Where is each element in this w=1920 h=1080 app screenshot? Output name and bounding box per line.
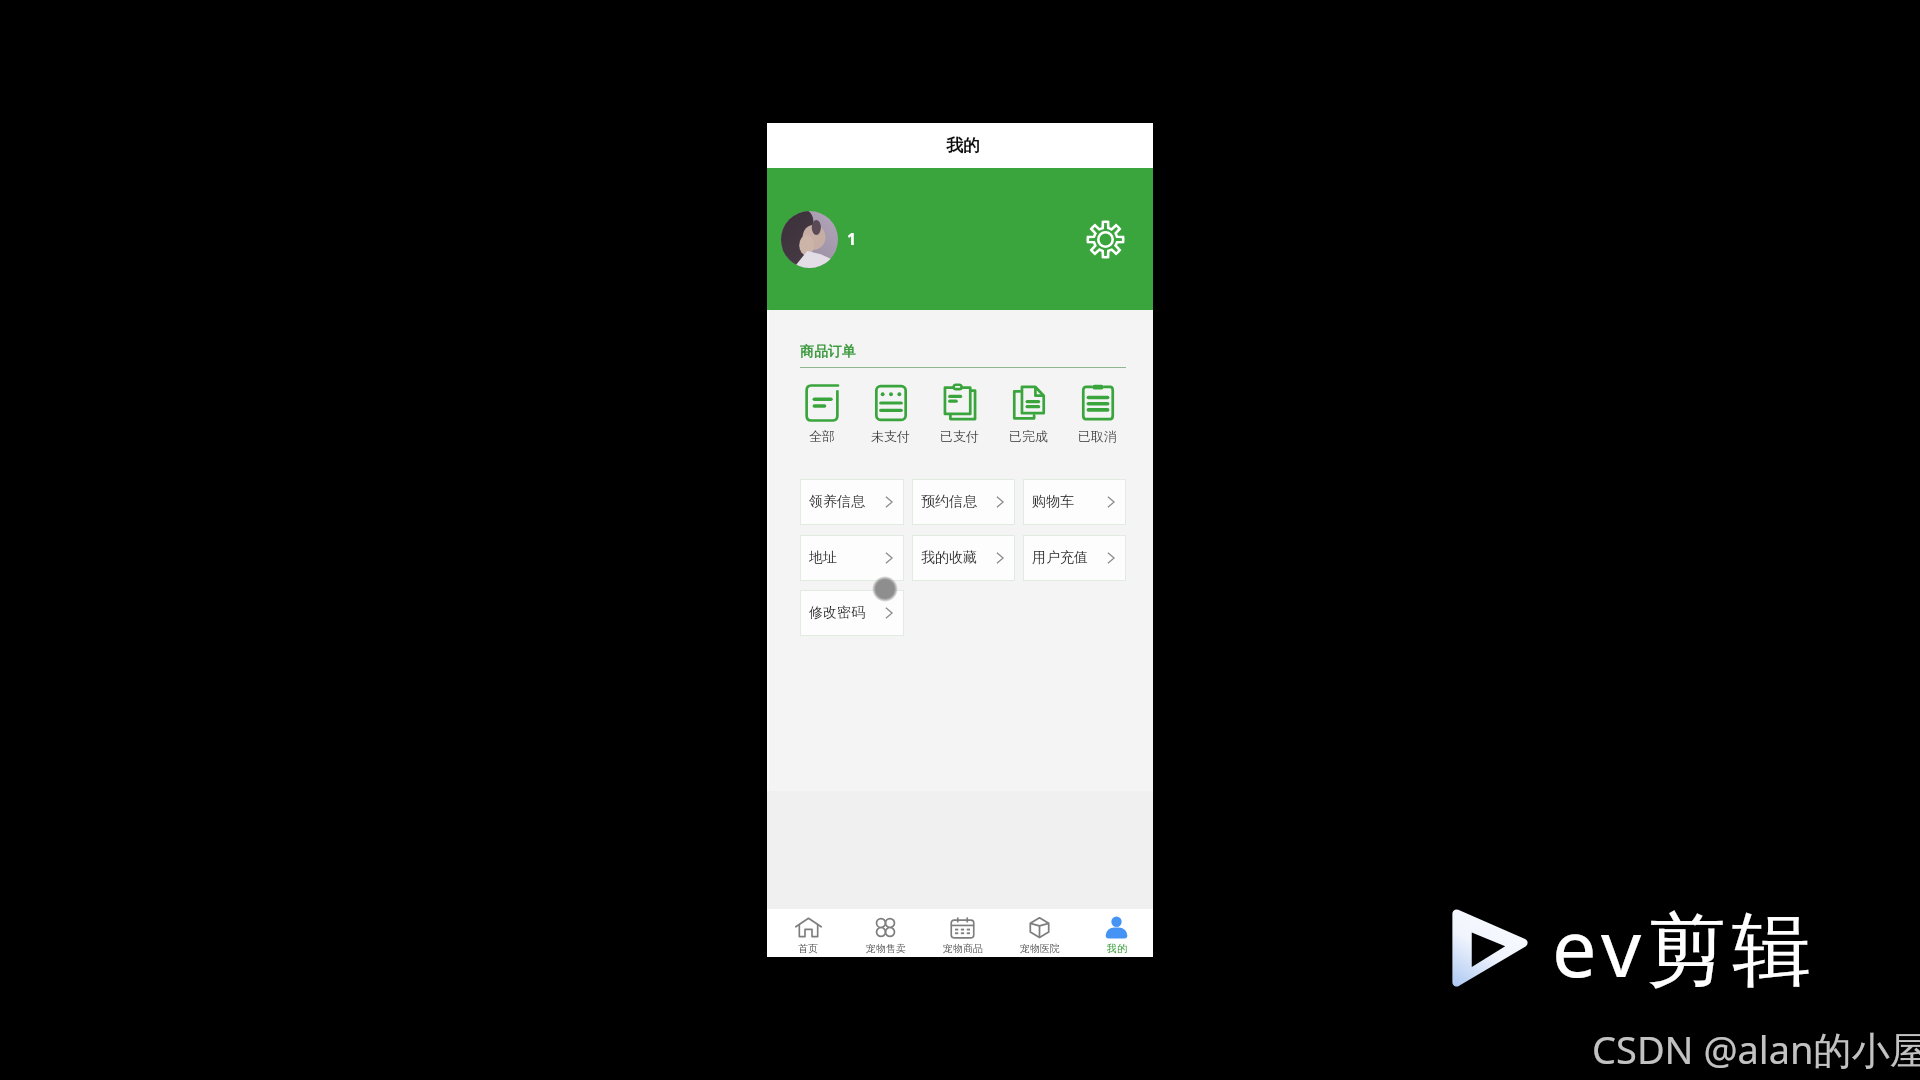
button[interactable]: 未支付 xyxy=(869,384,912,444)
button[interactable]: 用户充值 xyxy=(1023,535,1126,581)
button[interactable]: 预约信息 xyxy=(912,479,1015,525)
button[interactable]: 宠物商品 xyxy=(924,909,1001,957)
button[interactable]: 宠物医院 xyxy=(1001,909,1078,957)
staticText: 修改密码 xyxy=(809,604,865,622)
button[interactable]: 我的 xyxy=(1078,909,1155,957)
staticText: 预约信息 xyxy=(921,493,977,511)
staticText: 我的 xyxy=(946,135,980,156)
staticText: 已完成 xyxy=(1009,428,1048,444)
button[interactable]: 宠物售卖 xyxy=(847,909,924,957)
button[interactable]: 全部 xyxy=(800,384,843,444)
staticText: 全部 xyxy=(809,428,835,444)
staticText: 未支付 xyxy=(871,428,910,444)
button[interactable]: Settings xyxy=(1083,217,1127,261)
staticText: ev剪辑 xyxy=(1552,893,1818,1001)
staticText: 宠物医院 xyxy=(1020,942,1060,955)
staticText: 地址 xyxy=(809,549,837,567)
button[interactable]: 购物车 xyxy=(1023,479,1126,525)
button[interactable]: 已完成 xyxy=(1007,384,1050,444)
button[interactable]: 领养信息 xyxy=(800,479,904,525)
button[interactable]: Profile photo xyxy=(781,211,838,268)
button[interactable]: 已支付 xyxy=(938,384,981,444)
staticText: 用户充值 xyxy=(1032,549,1088,567)
staticText: CSDN @alan的小屋 xyxy=(1592,1023,1920,1075)
staticText: 购物车 xyxy=(1032,493,1074,511)
staticText: 宠物售卖 xyxy=(866,942,906,955)
button[interactable]: 已取消 xyxy=(1076,384,1119,444)
button[interactable]: 修改密码 xyxy=(800,590,904,636)
staticText: 商品订单 xyxy=(800,343,856,361)
staticText: 已支付 xyxy=(940,428,979,444)
staticText: 已取消 xyxy=(1078,428,1117,444)
staticText: 宠物商品 xyxy=(943,942,983,955)
button[interactable]: 地址 xyxy=(800,535,904,581)
staticText: 1 xyxy=(847,228,857,250)
button[interactable]: 首页 xyxy=(769,909,847,957)
staticText: 领养信息 xyxy=(809,493,865,511)
staticText: 首页 xyxy=(798,942,818,955)
button[interactable]: 我的收藏 xyxy=(912,535,1015,581)
staticText: 我的 xyxy=(1107,942,1127,955)
staticText: 我的收藏 xyxy=(921,549,977,567)
